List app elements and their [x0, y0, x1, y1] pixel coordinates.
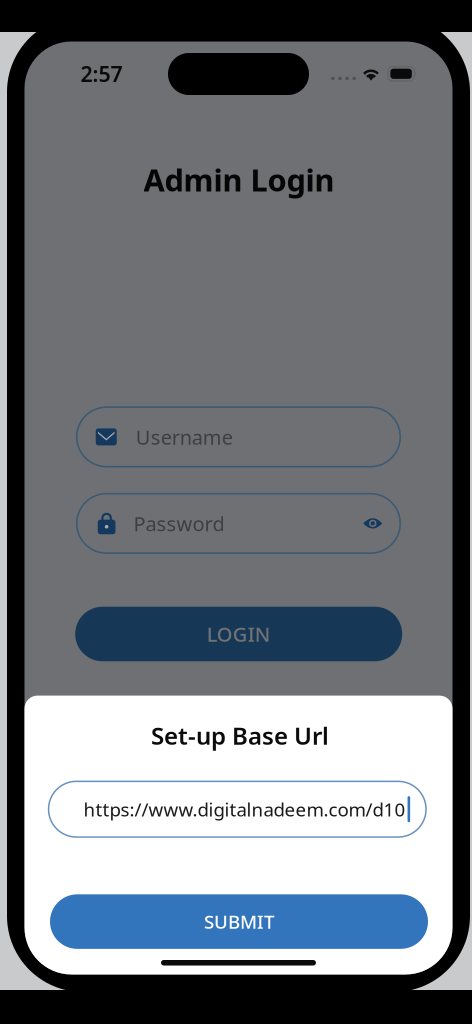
button[interactable]: Username [77, 407, 400, 467]
staticText: https://www.digitalnadeem.com/d10 [84, 797, 406, 822]
button[interactable]: https://www.digitalnadeem.com/d10 [49, 781, 426, 837]
button[interactable]: SUBMIT [50, 894, 428, 949]
staticText: LOGIN [207, 621, 271, 647]
staticText: 2:57 [80, 60, 122, 88]
button[interactable]: LOGIN [75, 607, 402, 661]
staticText: Admin Login [143, 159, 334, 200]
staticText: SUBMIT [204, 909, 274, 934]
staticText: Set-up Base Url [151, 720, 329, 751]
staticText: Username [136, 424, 233, 450]
button[interactable]: Password [77, 494, 400, 553]
staticText: Password [133, 510, 224, 537]
